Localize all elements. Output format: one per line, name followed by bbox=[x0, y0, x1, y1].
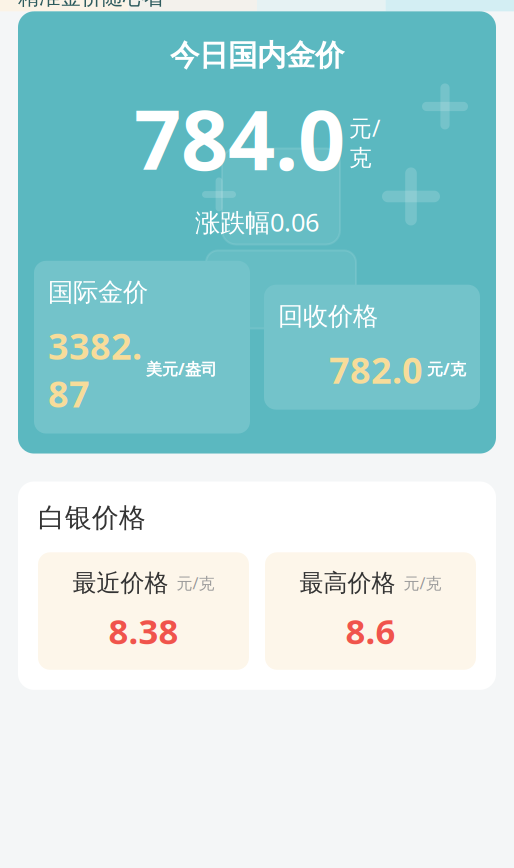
staticText: 784.0 bbox=[134, 83, 345, 193]
staticText: 元/克 bbox=[427, 358, 466, 379]
staticText: 回收价格 bbox=[278, 301, 378, 332]
staticText: 最近价格 bbox=[72, 568, 168, 598]
staticText: 美元/盎司 bbox=[146, 358, 217, 379]
staticText: 元/ bbox=[349, 113, 380, 143]
staticText: 元/克 bbox=[176, 572, 214, 594]
staticText: 国际金价 bbox=[48, 277, 148, 308]
staticText: 8.38 bbox=[108, 608, 178, 654]
staticText: 最高价格 bbox=[299, 568, 395, 598]
staticText: 克 bbox=[349, 144, 372, 172]
staticText: 涨跌幅0.06 bbox=[195, 205, 319, 239]
staticText: 白银价格 bbox=[38, 501, 146, 534]
staticText: 782.0 bbox=[329, 346, 423, 394]
staticText: 今日国内金价 bbox=[170, 37, 344, 73]
staticText: 3382.87 bbox=[48, 322, 142, 417]
staticText: 精准金价随心看 bbox=[18, 0, 165, 10]
staticText: 元/克 bbox=[403, 572, 441, 594]
staticText: 8.6 bbox=[345, 608, 395, 654]
